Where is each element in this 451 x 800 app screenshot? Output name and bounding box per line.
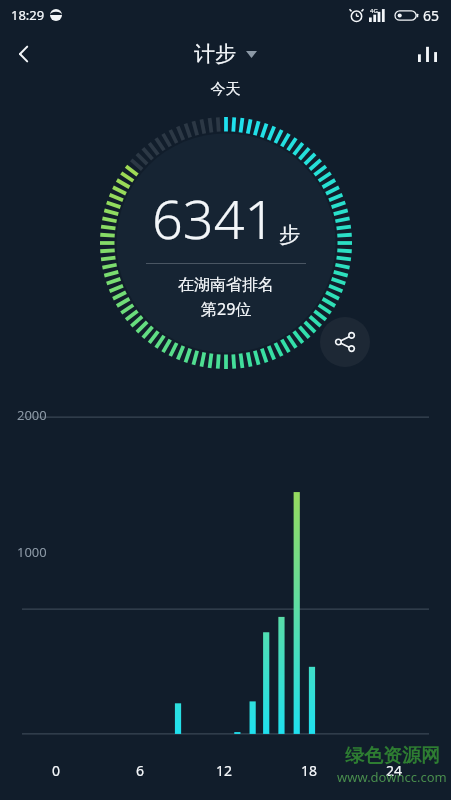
staticText: 2000: [17, 406, 47, 424]
button[interactable]: Statistics: [403, 30, 451, 78]
button[interactable]: 计步: [194, 41, 257, 67]
staticText: www.downcc.com: [337, 768, 447, 786]
button[interactable]: Share: [320, 317, 370, 367]
staticText: 步: [279, 222, 300, 248]
staticText: 12: [216, 761, 233, 780]
staticText: 18: [301, 761, 318, 780]
staticText: 6: [136, 761, 145, 780]
staticText: 在湖南省排名: [178, 275, 274, 295]
staticText: 18:29: [11, 6, 45, 24]
staticText: 65: [423, 6, 440, 25]
staticText: 0: [52, 761, 61, 780]
button[interactable]: Back: [0, 30, 48, 78]
staticText: 24: [386, 761, 403, 780]
staticText: 6341: [152, 181, 276, 255]
staticText: 第29位: [201, 298, 252, 320]
staticText: 1000: [17, 543, 47, 561]
staticText: 绿色资源网: [345, 744, 440, 768]
staticText: 计步: [194, 41, 236, 67]
staticText: 4G: [370, 7, 378, 15]
staticText: 今天: [0, 80, 451, 99]
